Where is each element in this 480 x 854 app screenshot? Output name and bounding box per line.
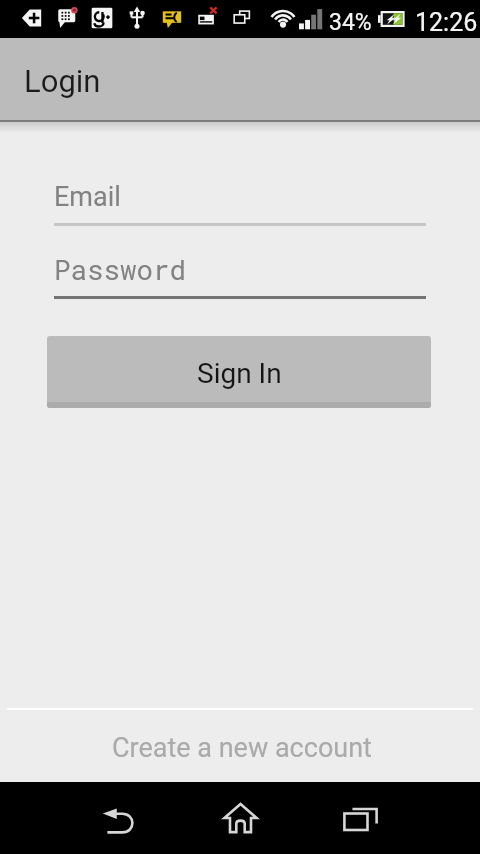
staticText: Password — [54, 251, 187, 287]
staticText: Login — [24, 63, 101, 99]
button[interactable]: Sign In — [47, 336, 431, 408]
staticText: Create a new account — [112, 732, 372, 764]
staticText: Sign In — [197, 357, 282, 390]
button[interactable]: Create a new account — [0, 710, 480, 782]
button[interactable]: Password — [54, 245, 426, 299]
button[interactable]: Recent apps — [300, 782, 420, 854]
button[interactable]: Home — [180, 782, 300, 854]
staticText: 34% — [329, 9, 372, 36]
button[interactable]: Back — [60, 782, 180, 854]
staticText: 12:26 — [415, 8, 478, 37]
button[interactable]: Email — [54, 171, 426, 226]
staticText: Email — [54, 181, 121, 213]
